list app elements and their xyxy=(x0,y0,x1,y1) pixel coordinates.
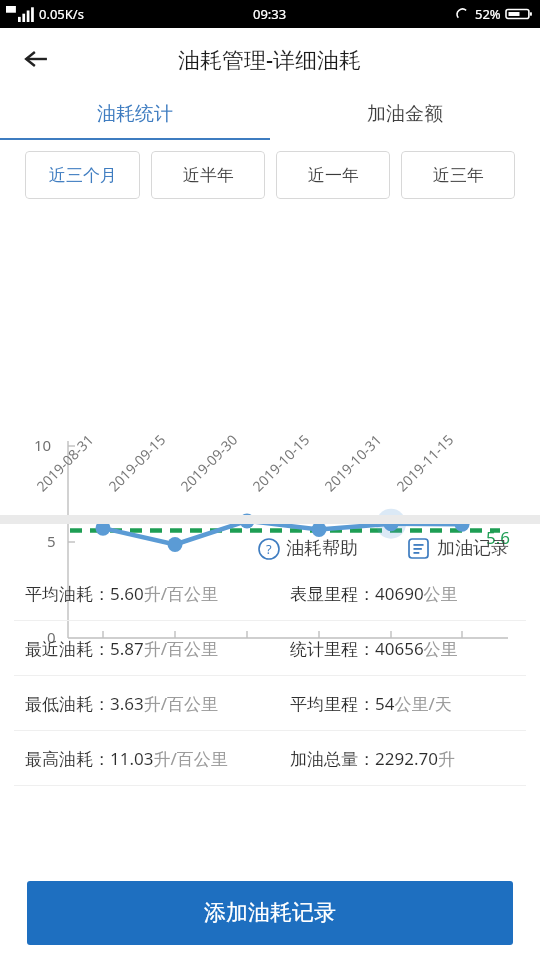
staticText: 2019-10-15 xyxy=(248,430,314,495)
staticText: 2019-10-31 xyxy=(320,430,386,495)
staticText: 5 xyxy=(47,531,56,551)
staticText: 5.6 xyxy=(486,526,511,549)
staticText: 油耗管理-详细油耗 xyxy=(178,44,362,74)
staticText: ? xyxy=(266,540,272,558)
staticText: 10 xyxy=(34,435,52,455)
button[interactable]: 近半年 xyxy=(151,151,265,199)
button[interactable]: 油耗统计 xyxy=(0,90,270,138)
staticText: 2019-09-15 xyxy=(104,430,170,495)
staticText: 平均油耗：5.60升/百公里 xyxy=(25,582,219,605)
staticText: 09:33 xyxy=(253,5,287,23)
staticText: 添加油耗记录 xyxy=(204,899,336,927)
staticText: 2019-11-15 xyxy=(392,430,458,495)
button[interactable]: 加油金额 xyxy=(270,90,540,138)
staticText: 0 xyxy=(47,627,56,647)
button[interactable]: 近一年 xyxy=(276,151,390,199)
staticText: 最近油耗：5.87升/百公里 xyxy=(25,637,219,660)
staticText: 近一年 xyxy=(308,165,359,186)
staticText: 表显里程：40690公里 xyxy=(290,582,458,605)
staticText: 52% xyxy=(475,5,501,23)
staticText: 2019-09-30 xyxy=(176,430,242,495)
staticText: 油耗帮助 xyxy=(286,537,358,560)
staticText: 0.05K/s xyxy=(39,5,84,23)
staticText: 加油记录 xyxy=(437,537,509,560)
button[interactable]: Back xyxy=(12,35,60,83)
button[interactable]: ? xyxy=(252,531,380,566)
staticText: 平均里程：54公里/天 xyxy=(290,692,452,715)
staticText: 加油金额 xyxy=(367,102,443,126)
staticText: 近三个月 xyxy=(49,165,117,186)
button[interactable]: 近三年 xyxy=(401,151,515,199)
staticText: 近三年 xyxy=(433,165,484,186)
staticText: 2019-08-31 xyxy=(32,430,98,495)
button[interactable]: 近三个月 xyxy=(25,151,140,199)
staticText: 近半年 xyxy=(183,165,234,186)
staticText: 加油总量：2292.70升 xyxy=(290,747,455,770)
button[interactable]: 添加油耗记录 xyxy=(27,881,513,945)
staticText: 油耗统计 xyxy=(97,102,173,126)
button[interactable]: 加油记录 xyxy=(402,531,515,566)
staticText: 统计里程：40656公里 xyxy=(290,637,458,660)
staticText: 最低油耗：3.63升/百公里 xyxy=(25,692,219,715)
staticText: 最高油耗：11.03升/百公里 xyxy=(25,747,228,770)
